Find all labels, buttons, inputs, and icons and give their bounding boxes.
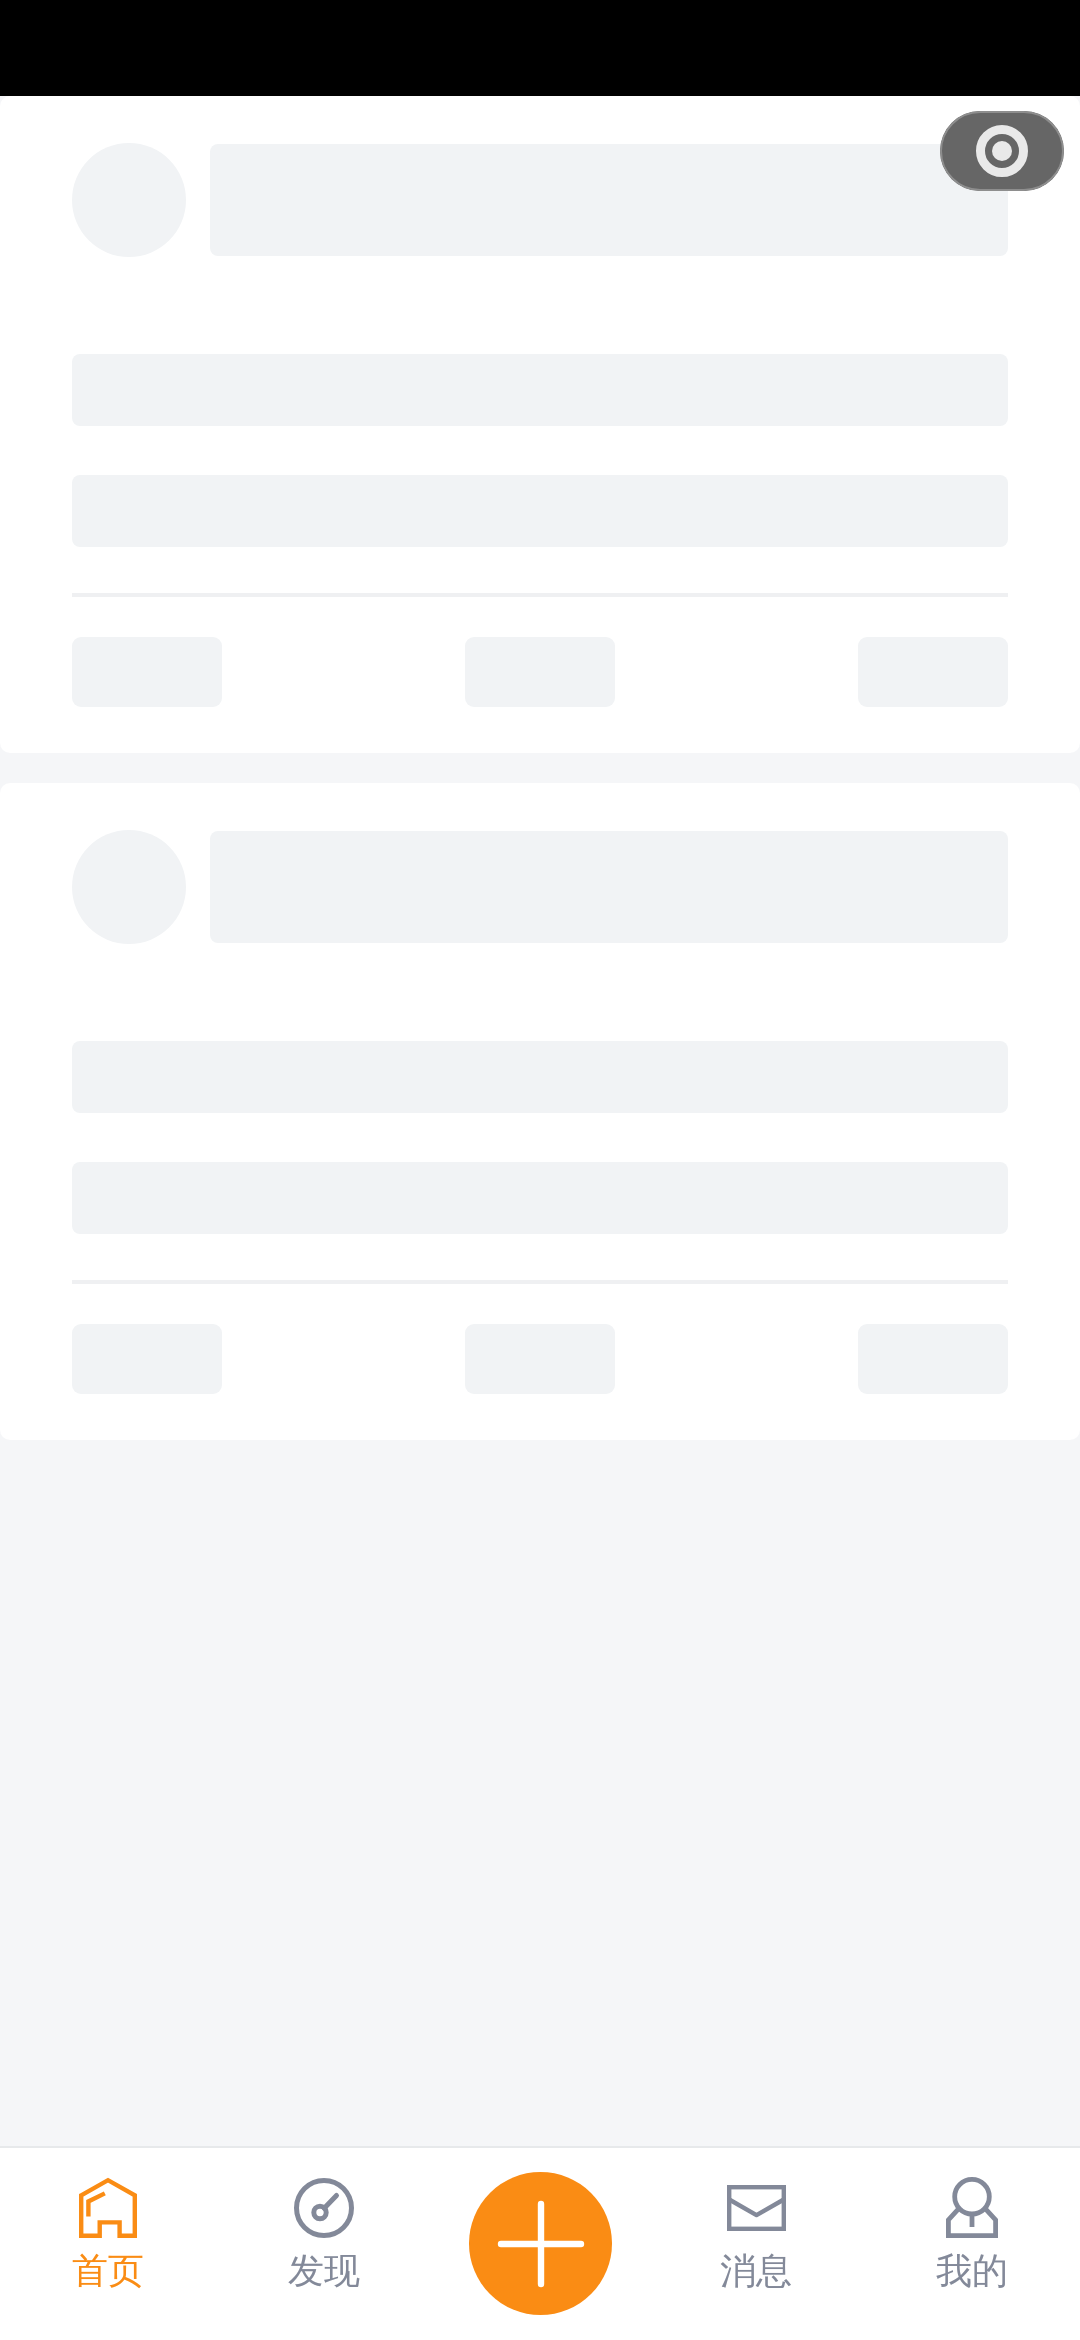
button[interactable]: Screen recording	[940, 111, 1064, 191]
staticText: 消息	[720, 2248, 792, 2293]
button[interactable]: 我的	[864, 2148, 1080, 2340]
staticText: 发现	[288, 2248, 360, 2293]
staticText: 首页	[72, 2248, 144, 2293]
staticText: 我的	[936, 2248, 1008, 2293]
button[interactable]: 消息	[648, 2148, 864, 2340]
button[interactable]: 首页	[0, 2148, 216, 2340]
button[interactable]: 发现	[216, 2148, 432, 2340]
button[interactable]: Add	[469, 2172, 612, 2315]
